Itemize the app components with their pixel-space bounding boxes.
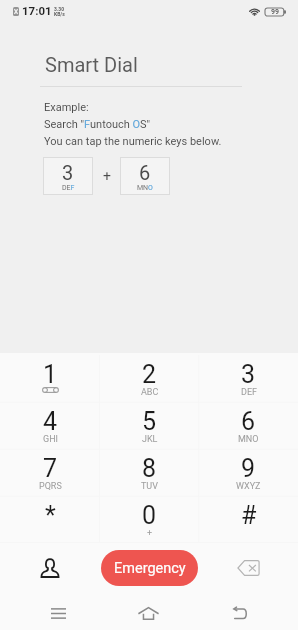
staticText: Example: [44,101,89,114]
button[interactable]: 9 [199,445,298,492]
staticText: DEF [241,387,257,398]
button[interactable]: Menu [13,596,103,630]
button[interactable]: 3 [43,157,93,195]
staticText: 9 [241,454,256,483]
staticText: + [147,528,153,539]
button[interactable]: 6 [199,398,298,445]
button[interactable]: * [0,492,100,539]
staticText: + [103,168,111,184]
staticText: 3 [62,161,74,184]
staticText: MNO [238,434,259,445]
staticText: 17:01 [22,4,52,17]
button[interactable]: Emergency [101,550,198,586]
button[interactable]: Backspace [199,540,298,596]
staticText: Emergency [114,560,186,577]
button[interactable]: 1 [0,351,100,398]
button[interactable]: Back [194,596,285,630]
staticText: 3 [241,360,256,389]
button[interactable]: 4 [0,398,100,445]
staticText: TUV [141,481,158,492]
staticText: Smart Dial [45,53,138,76]
staticText: 5 [142,407,157,436]
staticText: You can tap the numeric keys below. [44,135,222,148]
staticText: GHI [43,434,58,445]
staticText: 4 [43,407,58,436]
button[interactable]: 2 [100,351,199,398]
staticText: WXYZ [236,481,261,492]
staticText: * [45,501,56,530]
button[interactable]: # [199,492,298,539]
button[interactable]: 6 [120,157,170,195]
button[interactable]: Home [103,596,194,630]
button[interactable]: 7 [0,445,100,492]
staticText: 7 [43,454,58,483]
staticText: ABC [141,387,159,398]
staticText: MNO [137,184,153,192]
staticText: 6 [241,407,256,436]
staticText: Search "Funtouch OS" [44,118,151,131]
staticText: PQRS [39,481,62,492]
staticText: 8 [142,454,157,483]
staticText: JKL [142,434,158,445]
button[interactable]: 0 [100,492,199,539]
staticText: 99 [271,8,280,16]
staticText: 6 [139,161,151,184]
staticText: DEF [62,184,75,192]
staticText: 2 [142,360,157,389]
staticText: 1 [43,360,58,389]
staticText: # [241,501,257,530]
staticText: 3.30 [54,6,65,12]
button[interactable]: 8 [100,445,199,492]
staticText: KB/s [54,11,65,17]
button[interactable]: 3 [199,351,298,398]
button[interactable]: Contacts [0,540,100,596]
staticText: 0 [142,501,157,530]
button[interactable]: 5 [100,398,199,445]
